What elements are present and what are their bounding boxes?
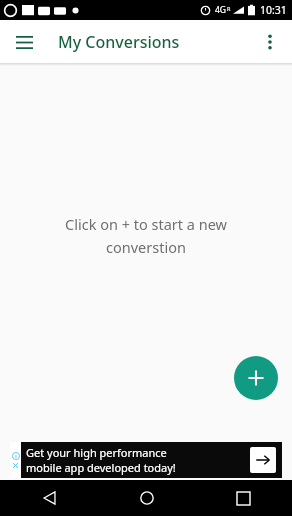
staticText: 4G (215, 4, 227, 16)
button[interactable]: Open ad (250, 447, 276, 473)
button[interactable]: Recent apps (195, 480, 292, 516)
button[interactable]: Home (98, 480, 195, 516)
button[interactable]: Open navigation menu (6, 24, 42, 60)
staticText: My Conversions (58, 31, 180, 53)
staticText: converstion (106, 237, 186, 257)
staticText: R (227, 5, 231, 12)
button[interactable]: Add new conversion (234, 356, 278, 400)
button[interactable]: Back (0, 480, 98, 516)
staticText: Get your high performance (26, 445, 167, 460)
staticText: mobile app developed today! (26, 460, 176, 475)
button[interactable]: Advertisement (10, 442, 282, 478)
staticText: 10:31 (260, 3, 287, 17)
button[interactable]: More options (252, 24, 288, 60)
staticText: Click on + to start a new (65, 214, 227, 234)
